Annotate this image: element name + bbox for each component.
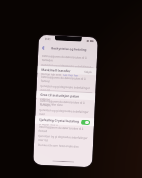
staticText: tjenesten og gi deg bedre anbefalinger o… bbox=[40, 84, 92, 94]
staticText: Maskinell trasnfer bbox=[41, 68, 71, 73]
staticText: Du kan når som helst endre disse val bbox=[39, 117, 86, 123]
staticText: Beskyttelse og betaling bbox=[51, 46, 87, 52]
button[interactable]: Back bbox=[40, 45, 47, 51]
staticText: Du kan når som helst endre diss bbox=[38, 143, 79, 149]
staticText: tjenesten og gi deg bedre anbefalinger o… bbox=[39, 108, 91, 118]
staticText: tjenesten og gi deg bedre anbefalinger o… bbox=[41, 63, 93, 73]
staticText: Vi lagrer ikke d bbox=[39, 122, 58, 127]
button[interactable]: Gros til instutisjon palan bbox=[36, 91, 95, 100]
staticText: 9:41 bbox=[45, 37, 51, 41]
staticText: Gros til instutisjon palan bbox=[40, 93, 79, 99]
staticText: Informasjonen du deler brukes til å forb… bbox=[38, 125, 90, 135]
staticText: Informasjonen du deler brukes til å forb… bbox=[41, 75, 92, 85]
staticText: Vi lagrer ikke data bbox=[40, 102, 64, 107]
staticText: Slå på bbox=[84, 70, 92, 74]
staticText: Sjefsalleg Crystal betaling bbox=[39, 118, 79, 124]
staticText: Informasjonen du deler brukes til å forb… bbox=[40, 99, 91, 109]
button[interactable]: Maskinell trasnfer bbox=[37, 66, 97, 75]
staticText: Les mer her bbox=[63, 73, 79, 78]
staticText: Informasjonen du deler brukes til å forb… bbox=[42, 54, 93, 64]
staticText: tjenesten og gi deg bedre anbefalinger o… bbox=[38, 134, 89, 144]
staticText: Du kan når som bbox=[41, 72, 62, 77]
button[interactable]: Sjefsalleg Crystal betaling bbox=[35, 116, 94, 126]
staticText: Du kan når som helst endre disse valgene bbox=[40, 93, 91, 103]
